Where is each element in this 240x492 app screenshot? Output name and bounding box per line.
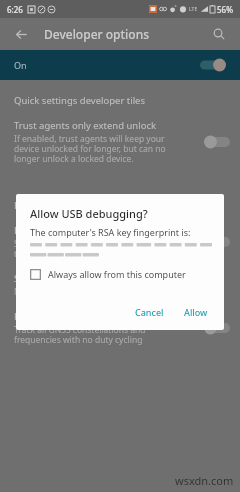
staticText: If enabled, trust agents will keep your … — [14, 133, 166, 165]
staticText: Cancel — [135, 306, 164, 318]
staticText: LTE — [189, 6, 198, 13]
button[interactable]: Revoke USB debugging authorisations — [0, 199, 240, 212]
button[interactable]: Trust agents only extend unlock — [0, 119, 240, 165]
button[interactable]: Cancel — [127, 302, 172, 322]
button[interactable]: Toggle — [204, 135, 230, 149]
staticText: 6:26 — [7, 4, 23, 15]
staticText: Developer options — [44, 26, 150, 42]
button[interactable]: Force full GNSS measurements — [0, 310, 240, 346]
staticText: Track all GNSS constellations and freque… — [14, 324, 146, 346]
staticText: Select mock location app — [14, 272, 125, 285]
staticText: No mock location app set — [14, 286, 116, 298]
staticText: wsxdn.com — [175, 473, 234, 488]
button[interactable]: On — [0, 50, 240, 80]
button[interactable]: Back — [10, 23, 32, 45]
staticText: Bug report shortcut — [14, 224, 103, 237]
staticText: Force full GNSS measurements — [14, 310, 152, 323]
staticText: Always allow from this computer — [48, 268, 186, 280]
staticText: On — [14, 59, 27, 71]
staticText: Allow USB debugging? — [30, 206, 148, 221]
button[interactable]: Bug report shortcut — [0, 224, 240, 260]
button[interactable]: Quick settings developer tiles — [0, 94, 240, 107]
staticText: Quick settings developer tiles — [14, 94, 146, 107]
button[interactable]: Allow — [176, 302, 216, 322]
staticText: 56% — [217, 4, 233, 15]
staticText: Trust agents only extend unlock — [14, 119, 157, 132]
button[interactable]: Select mock location app — [0, 272, 240, 298]
staticText: Allow — [184, 306, 208, 318]
button[interactable]: Developer options on — [200, 58, 226, 72]
staticText: The computer's RSA key fingerprint is: — [30, 226, 191, 238]
staticText: Show a button in the power menu for taki… — [14, 238, 164, 260]
staticText: Revoke USB debugging authorisations — [14, 199, 186, 212]
button[interactable]: Toggle — [204, 235, 230, 249]
button[interactable]: Toggle — [204, 321, 230, 335]
button[interactable]: Search — [208, 23, 230, 45]
button[interactable]: Always allow from this computer — [16, 266, 224, 282]
